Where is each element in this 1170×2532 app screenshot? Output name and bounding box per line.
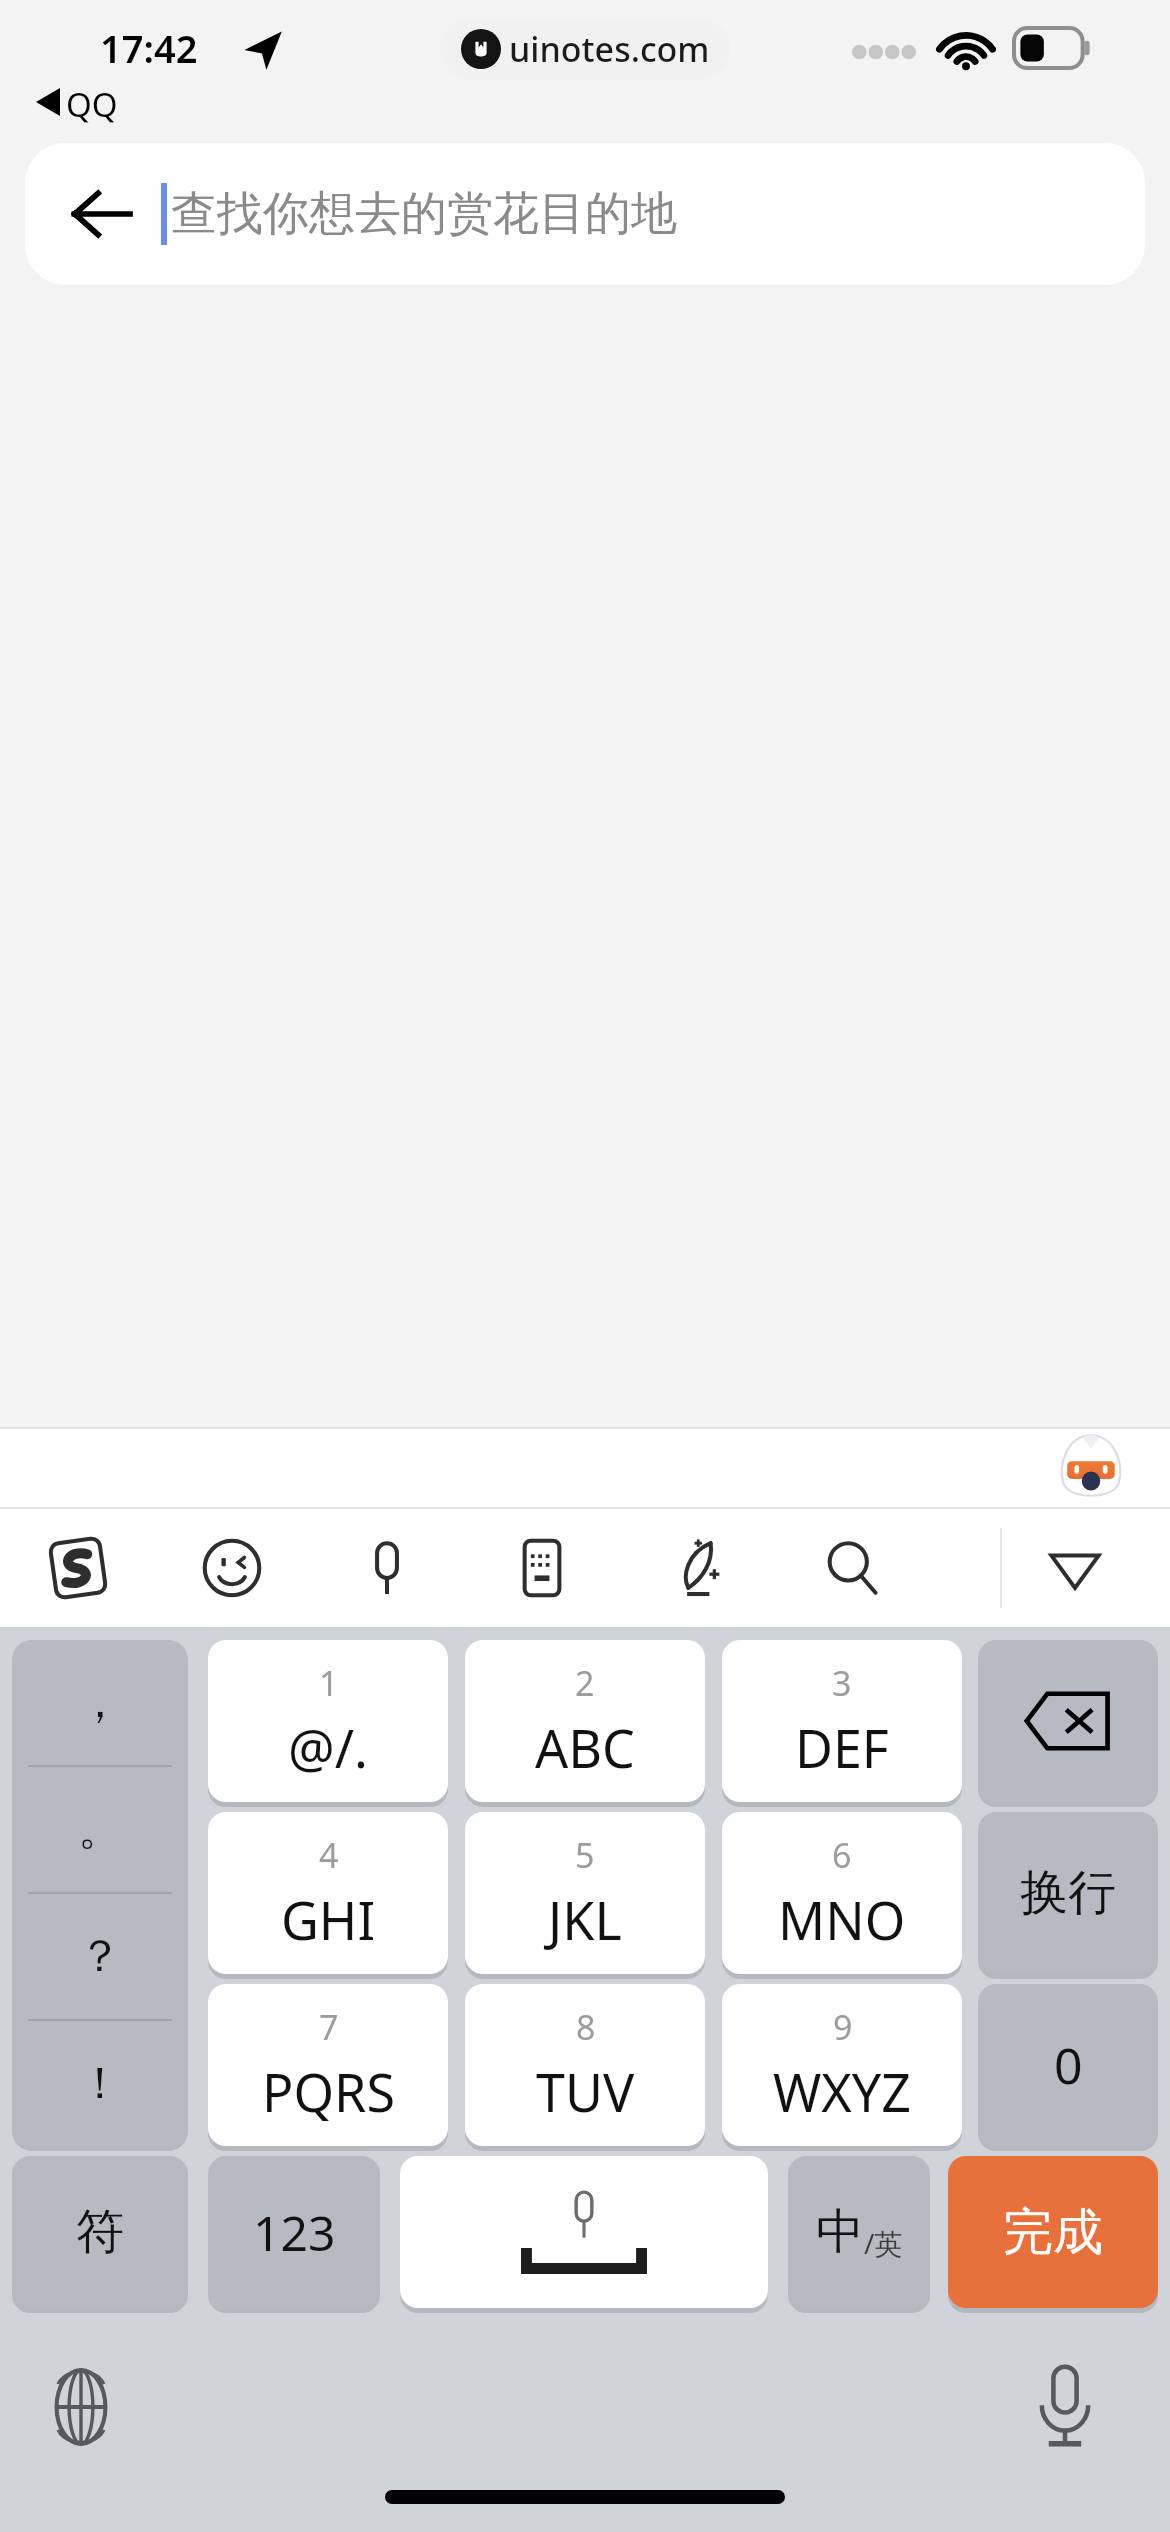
button[interactable]: Keyboard layout xyxy=(484,1509,600,1627)
button[interactable]: Search xyxy=(794,1509,910,1627)
staticText: 17:42 xyxy=(100,22,198,74)
staticText: /英 xyxy=(864,2224,903,2262)
button[interactable]: Voice input xyxy=(329,1509,445,1627)
staticText: 0 xyxy=(1054,2031,1083,2099)
staticText: ， xyxy=(78,1675,122,1730)
staticText: 完成 xyxy=(1003,2201,1103,2264)
button[interactable]: AI assistant xyxy=(1058,1434,1124,1502)
button[interactable]: Handwriting xyxy=(639,1509,755,1627)
staticText: ？ xyxy=(78,1929,122,1984)
button[interactable]: 1 xyxy=(208,1640,448,1802)
staticText: 换行 xyxy=(1020,1863,1116,1923)
button[interactable]: Dictation xyxy=(1022,2360,1108,2452)
staticText: 查找你想去的赏花目的地 xyxy=(171,185,677,243)
staticText: TUV xyxy=(536,2056,635,2127)
staticText: GHI xyxy=(281,1884,376,1955)
staticText: ！ xyxy=(78,2056,122,2111)
staticText: uinotes.com xyxy=(509,26,710,72)
button[interactable]: 8 xyxy=(465,1984,705,2146)
staticText: DEF xyxy=(795,1712,889,1783)
staticText: @/. xyxy=(288,1712,369,1783)
button[interactable]: 2 xyxy=(465,1640,705,1802)
button[interactable]: Chinese English toggle xyxy=(788,2156,930,2308)
staticText: 4 xyxy=(319,1832,339,1878)
button[interactable]: ， xyxy=(12,1640,188,2146)
button[interactable]: Hide keyboard xyxy=(1017,1509,1133,1627)
button[interactable]: Switch keyboard xyxy=(42,2366,120,2448)
button[interactable]: 4 xyxy=(208,1812,448,1974)
staticText: QQ xyxy=(66,82,118,126)
button[interactable]: 符 xyxy=(12,2156,188,2308)
button[interactable]: Back xyxy=(25,143,1145,285)
button[interactable]: 完成 xyxy=(948,2156,1158,2308)
staticText: 中 xyxy=(816,2202,864,2262)
button[interactable]: Backspace xyxy=(978,1640,1158,1802)
staticText: WXYZ xyxy=(773,2056,912,2127)
staticText: 123 xyxy=(253,2200,336,2265)
staticText: 7 xyxy=(319,2004,339,2050)
button[interactable]: Emoji xyxy=(174,1509,290,1627)
staticText: PQRS xyxy=(262,2056,395,2127)
button[interactable]: 5 xyxy=(465,1812,705,1974)
button[interactable]: 3 xyxy=(722,1640,962,1802)
staticText: 9 xyxy=(833,2004,853,2050)
staticText: 8 xyxy=(576,2004,596,2050)
button[interactable]: 0 xyxy=(978,1984,1158,2146)
staticText: ABC xyxy=(535,1712,635,1783)
button[interactable]: 6 xyxy=(722,1812,962,1974)
staticText: 6 xyxy=(832,1832,852,1878)
staticText: 3 xyxy=(832,1660,852,1706)
staticText: 2 xyxy=(575,1660,595,1706)
button[interactable]: 换行 xyxy=(978,1812,1158,1974)
button[interactable]: 123 xyxy=(208,2156,380,2308)
staticText: JKL xyxy=(548,1884,622,1955)
staticText: MNO xyxy=(778,1884,906,1955)
staticText: 5 xyxy=(575,1832,595,1878)
staticText: 1 xyxy=(319,1660,339,1706)
button[interactable]: 7 xyxy=(208,1984,448,2146)
button[interactable]: Space xyxy=(400,2156,768,2308)
staticText: 符 xyxy=(76,2202,124,2262)
button[interactable]: 9 xyxy=(722,1984,962,2146)
staticText: 。 xyxy=(78,1802,122,1857)
button[interactable]: Back xyxy=(61,174,141,254)
button[interactable]: Sogou xyxy=(20,1509,136,1627)
